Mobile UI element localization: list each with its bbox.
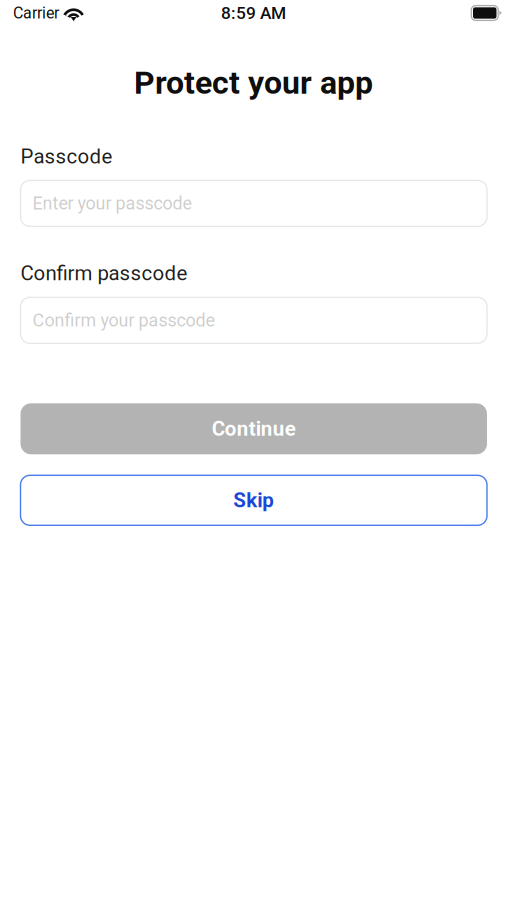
- staticText: 8:59 AM: [221, 3, 286, 23]
- staticText: Carrier: [13, 4, 59, 22]
- button[interactable]: Continue: [20, 403, 487, 454]
- button[interactable]: Enter your passcode: [20, 180, 487, 226]
- staticText: Confirm your passcode: [32, 310, 214, 331]
- staticText: Continue: [212, 417, 296, 441]
- staticText: Skip: [233, 488, 274, 512]
- staticText: Enter your passcode: [32, 193, 191, 214]
- staticText: Confirm passcode: [20, 261, 187, 285]
- staticText: Protect your app: [134, 64, 373, 101]
- staticText: Passcode: [20, 144, 112, 168]
- button[interactable]: Confirm your passcode: [20, 297, 487, 343]
- button[interactable]: Skip: [20, 475, 487, 525]
